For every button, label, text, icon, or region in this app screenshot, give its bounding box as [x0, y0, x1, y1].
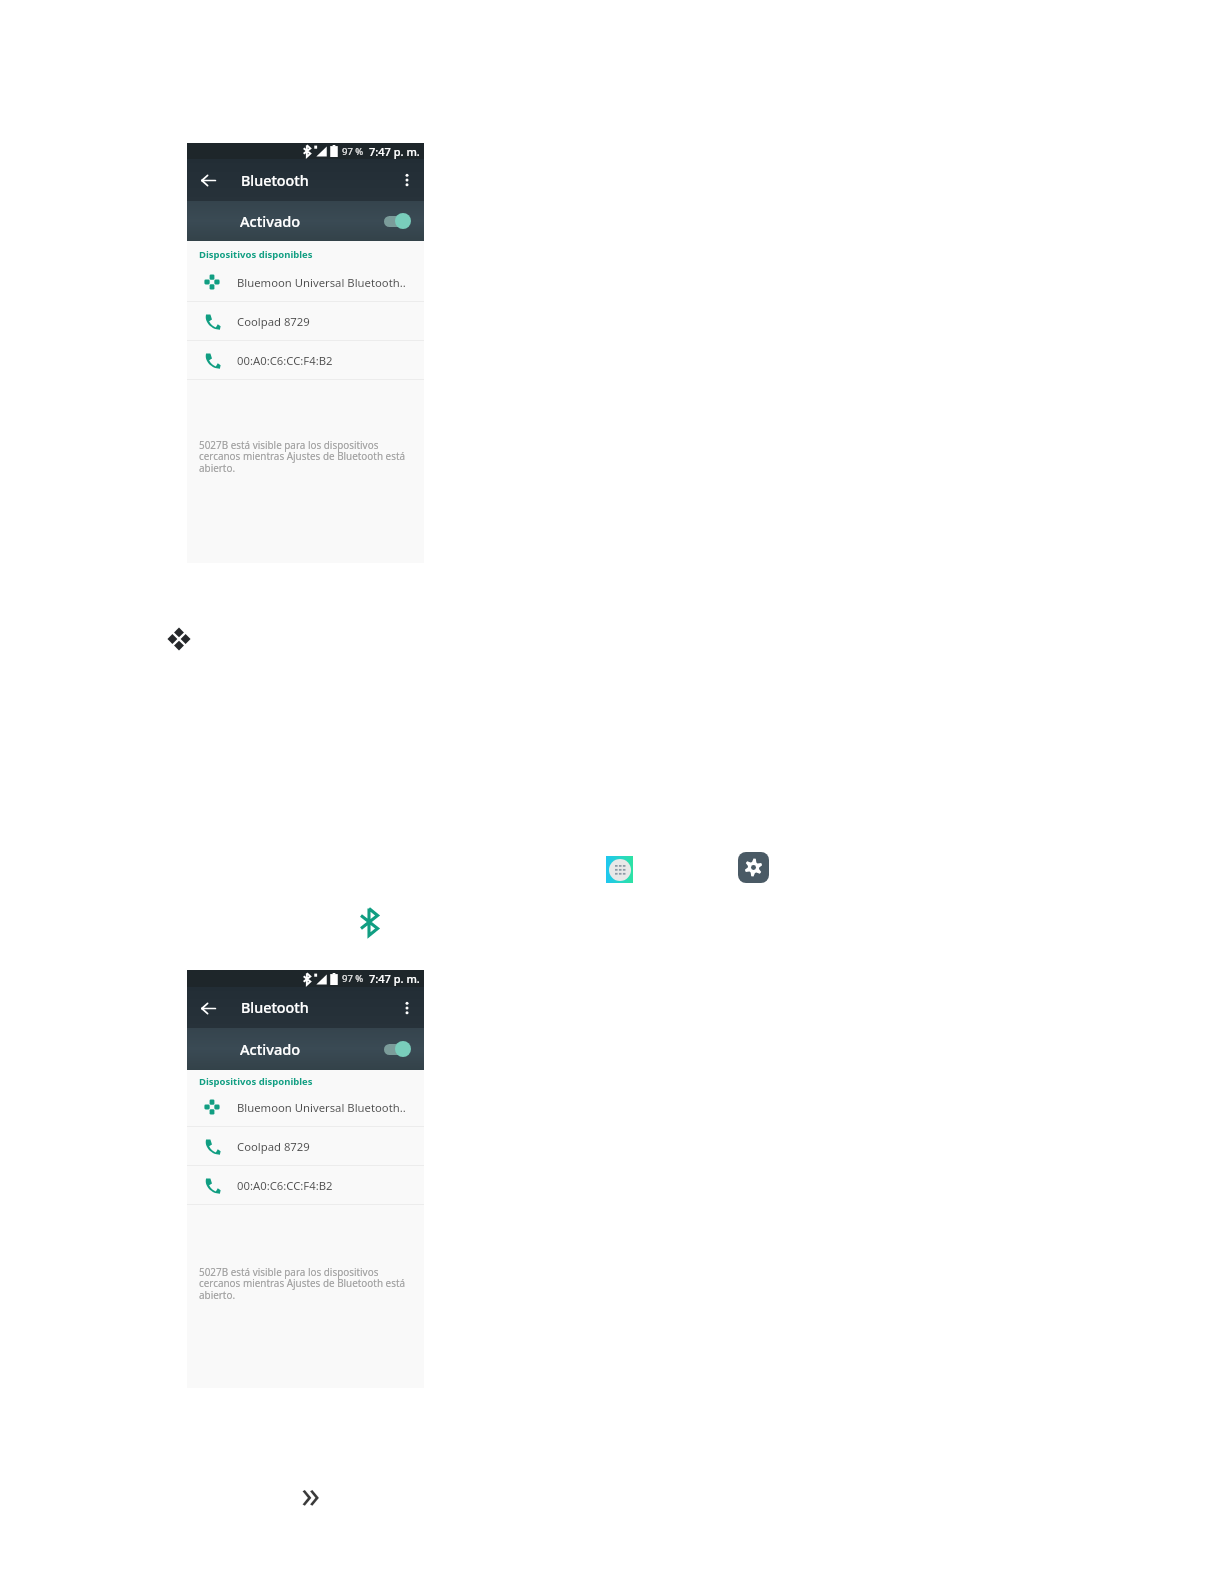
button[interactable]: Back: [195, 167, 221, 193]
staticText: 00:A0:C6:CC:F4:B2: [237, 353, 333, 368]
button[interactable]: Back: [195, 995, 221, 1021]
button[interactable]: Game controller: [168, 627, 190, 651]
staticText: Dispositivos disponibles: [199, 248, 313, 261]
button[interactable]: Bluemoon Universal Bluetooth..: [187, 1088, 424, 1126]
staticText: 5027B está visible para los dispositivos…: [199, 438, 406, 475]
staticText: Dispositivos disponibles: [199, 1075, 313, 1088]
staticText: »: [301, 1467, 321, 1519]
staticText: Coolpad 8729: [237, 314, 310, 329]
button[interactable]: More options: [394, 167, 420, 193]
button[interactable]: Coolpad 8729: [187, 302, 424, 340]
staticText: 97 %: [342, 145, 364, 158]
button[interactable]: 00:A0:C6:CC:F4:B2: [187, 341, 424, 379]
staticText: 7:47 p. m.: [369, 144, 420, 159]
staticText: Bluemoon Universal Bluetooth..: [237, 1100, 406, 1115]
staticText: 5027B está visible para los dispositivos…: [199, 1265, 406, 1302]
staticText: Activado: [240, 1039, 301, 1059]
staticText: Activado: [240, 211, 301, 231]
button[interactable]: More options: [394, 995, 420, 1021]
button[interactable]: Bluetooth: [359, 907, 379, 937]
button[interactable]: Activado: [187, 201, 424, 241]
button[interactable]: Bluemoon Universal Bluetooth..: [187, 263, 424, 301]
button[interactable]: Settings: [738, 852, 769, 883]
staticText: Coolpad 8729: [237, 1139, 310, 1154]
button[interactable]: Activado: [187, 1028, 424, 1070]
staticText: Bluetooth: [241, 998, 309, 1017]
staticText: 00:A0:C6:CC:F4:B2: [237, 1178, 333, 1193]
staticText: Bluemoon Universal Bluetooth..: [237, 275, 406, 290]
staticText: Bluetooth: [241, 171, 309, 190]
button[interactable]: All apps: [606, 856, 633, 883]
button[interactable]: 00:A0:C6:CC:F4:B2: [187, 1166, 424, 1204]
staticText: 7:47 p. m.: [369, 971, 420, 986]
staticText: 97 %: [342, 972, 364, 985]
button[interactable]: Coolpad 8729: [187, 1127, 424, 1165]
